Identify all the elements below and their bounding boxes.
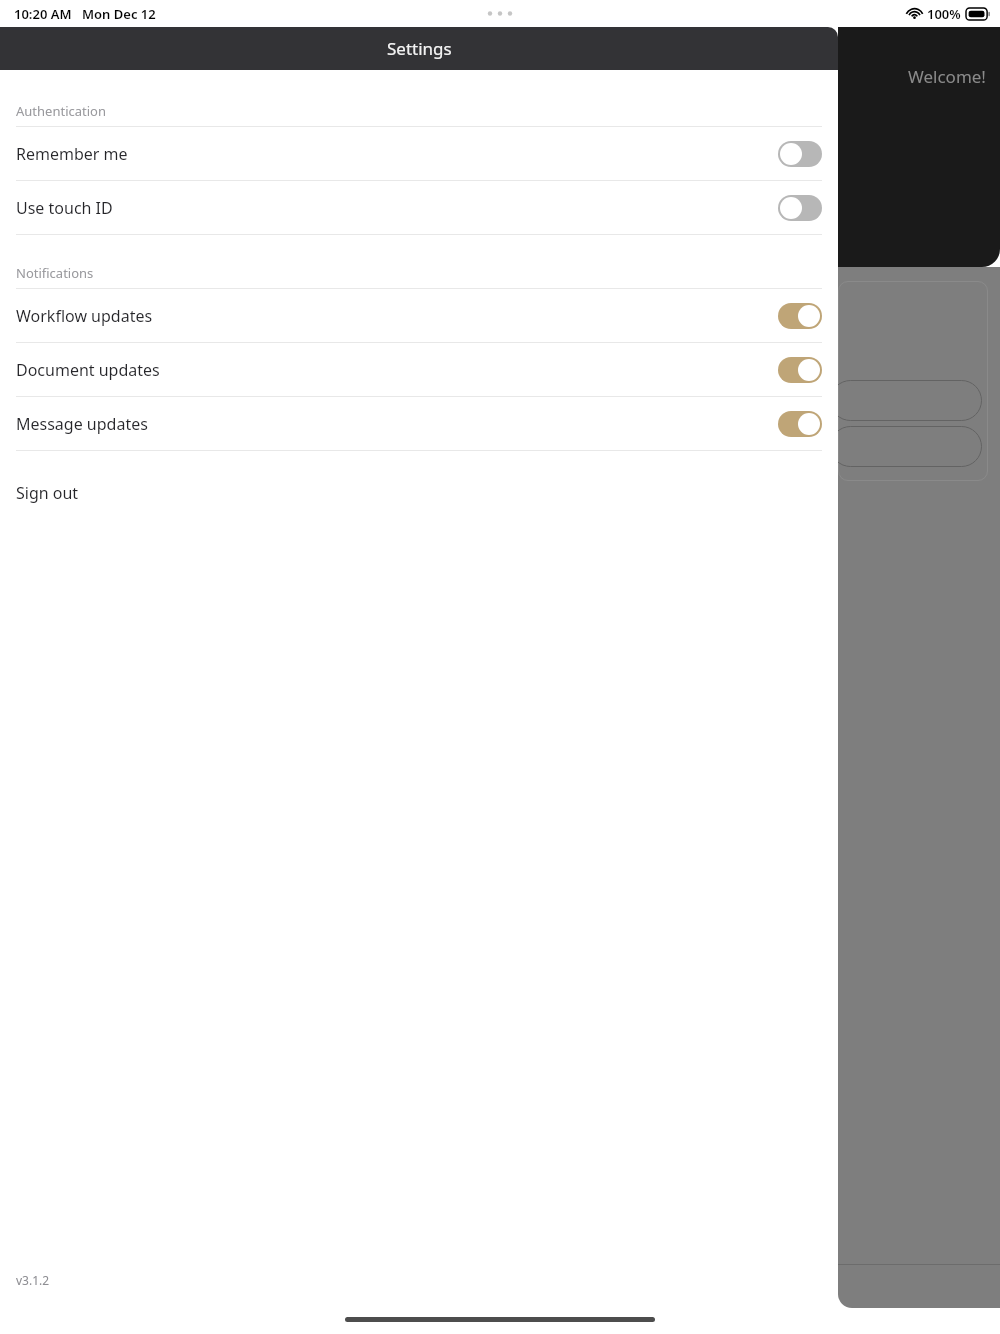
- button[interactable]: Switch on: [778, 303, 822, 329]
- button[interactable]: Switch on: [778, 357, 822, 383]
- staticText: 100%: [927, 5, 961, 23]
- other: Battery 100 percent: [966, 8, 990, 20]
- button[interactable]: Document updates: [0, 343, 838, 397]
- button[interactable]: Workflow updates: [0, 289, 838, 343]
- button[interactable]: Use touch ID: [0, 181, 838, 235]
- staticText: Authentication: [16, 102, 106, 120]
- staticText: Document updates: [16, 359, 778, 381]
- button[interactable]: Message updates: [0, 397, 838, 451]
- staticText: Use touch ID: [16, 197, 778, 219]
- button[interactable]: Switch on: [778, 411, 822, 437]
- staticText: Settings: [387, 37, 452, 60]
- button[interactable]: Switch off: [778, 195, 822, 221]
- other: Wi-Fi: [907, 6, 922, 21]
- staticText: 10:20 AM: [14, 5, 72, 23]
- staticText: Notifications: [16, 264, 94, 282]
- button[interactable]: Sign out: [0, 473, 838, 513]
- button[interactable]: Remember me: [0, 127, 838, 181]
- staticText: Sign out: [16, 482, 79, 504]
- staticText: Mon Dec 12: [82, 5, 156, 23]
- staticText: Workflow updates: [16, 305, 778, 327]
- staticText: Welcome!: [908, 65, 986, 88]
- button[interactable]: Switch off: [778, 141, 822, 167]
- staticText: Message updates: [16, 413, 778, 435]
- staticText: Remember me: [16, 143, 778, 165]
- staticText: v3.1.2: [16, 1272, 50, 1288]
